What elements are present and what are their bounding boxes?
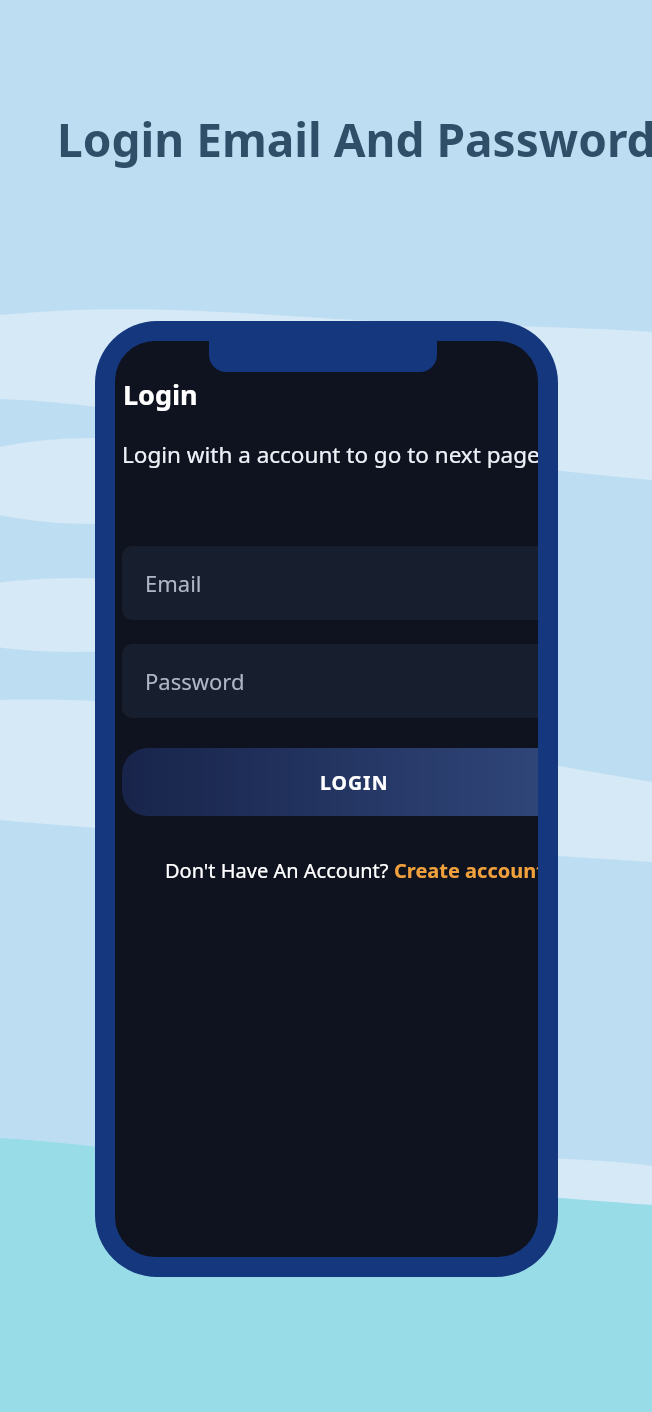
button[interactable]: Password [122,644,538,718]
button[interactable]: Create account [394,857,538,884]
staticText: Don't Have An Account? [165,857,394,884]
staticText: Login Email And Password [57,108,652,171]
button[interactable]: LOGIN [143,748,538,816]
staticText: Password [145,666,245,696]
staticText: LOGIN [320,769,389,796]
staticText: Login [123,376,198,413]
button[interactable]: Email [122,546,538,620]
staticText: Email [145,568,202,598]
staticText: Login with a account to go to next page [122,439,538,470]
